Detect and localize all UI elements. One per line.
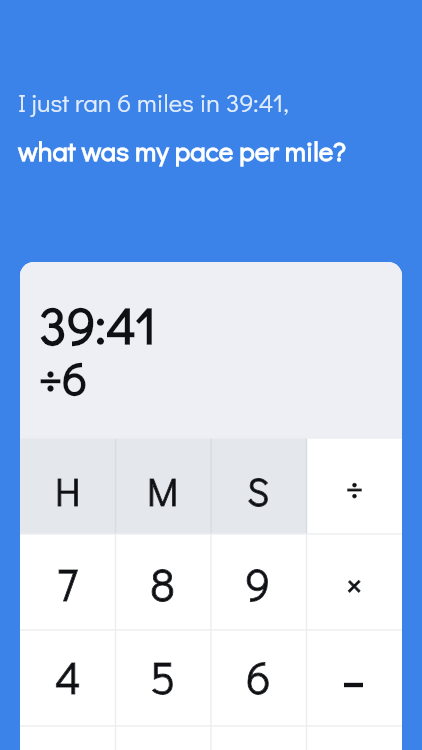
button[interactable]: ÷: [306, 438, 402, 534]
staticText: I just ran 6 miles in 39:41,: [18, 85, 289, 118]
button[interactable]: 5: [115, 630, 210, 726]
staticText: −: [343, 654, 365, 709]
staticText: 4: [55, 647, 81, 706]
staticText: 5: [150, 647, 176, 706]
staticText: ×: [345, 559, 364, 608]
staticText: S: [247, 466, 270, 516]
button[interactable]: 3: [210, 726, 306, 750]
button[interactable]: S: [210, 438, 306, 534]
staticText: what was my pace per mile?: [18, 132, 346, 168]
button[interactable]: M: [115, 438, 210, 534]
staticText: 7: [57, 554, 79, 613]
staticText: 8: [150, 554, 175, 613]
button[interactable]: −: [306, 630, 402, 726]
button[interactable]: 9: [210, 534, 306, 630]
staticText: ÷: [346, 465, 363, 510]
button[interactable]: 8: [115, 534, 210, 630]
staticText: 4: [55, 647, 81, 706]
button[interactable]: 2: [115, 726, 210, 750]
staticText: 9: [245, 554, 271, 613]
staticText: H: [55, 466, 81, 516]
staticText: 8: [150, 554, 175, 613]
button[interactable]: 4: [20, 630, 115, 726]
staticText: ÷: [346, 465, 363, 510]
staticText: 5: [150, 647, 176, 706]
staticText: 9: [245, 554, 271, 613]
button[interactable]: +: [306, 726, 402, 750]
staticText: ×: [345, 559, 364, 608]
staticText: H: [55, 466, 81, 516]
staticText: M: [147, 466, 179, 516]
staticText: 6: [246, 647, 271, 706]
button[interactable]: 7: [20, 534, 115, 630]
button[interactable]: 6: [210, 630, 306, 726]
staticText: S: [247, 466, 270, 516]
staticText: 6: [246, 647, 271, 706]
staticText: 7: [57, 554, 79, 613]
staticText: M: [147, 466, 179, 516]
staticText: 39:41: [39, 290, 157, 358]
staticText: −: [343, 654, 365, 709]
button[interactable]: ×: [306, 534, 402, 630]
button[interactable]: H: [20, 438, 115, 534]
staticText: ÷6: [39, 347, 88, 407]
